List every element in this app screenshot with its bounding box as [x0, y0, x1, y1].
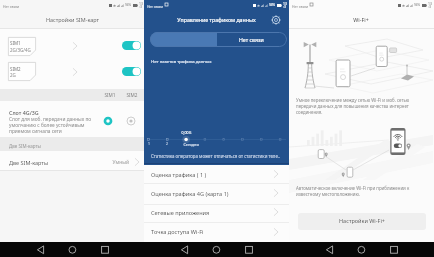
- staticText: Нет связи: [292, 4, 309, 9]
- staticText: 94%: [269, 3, 276, 7]
- staticText: Слот для моб. передачи данных по умолчан…: [9, 116, 92, 134]
- staticText: Автоматическое включение Wi-Fi при прибл…: [296, 185, 410, 197]
- button[interactable]: [298, 213, 426, 230]
- staticText: 13:30: [283, 1, 287, 9]
- staticText: Нет связи: [147, 4, 164, 9]
- staticText: 2G/3G/4G: [10, 47, 31, 53]
- staticText: 13:30: [428, 1, 432, 9]
- staticText: Статистика оператора может отличаться от…: [151, 153, 281, 159]
- staticText: Настройки SIM-карт: [46, 16, 99, 23]
- button[interactable]: [144, 222, 289, 241]
- staticText: 94%: [125, 3, 132, 7]
- staticText: Слот 4G/3G: [9, 109, 39, 116]
- button[interactable]: [0, 58, 144, 88]
- button[interactable]: [144, 165, 289, 184]
- staticText: 94%: [414, 3, 421, 7]
- staticText: Оценка трафика ( 1 ): [151, 171, 207, 179]
- staticText: Две SIM-карты: [9, 159, 49, 166]
- staticText: Управление трафиком данных: [177, 16, 256, 23]
- staticText: Точка доступа Wi-Fi: [151, 228, 204, 236]
- staticText: Умное переключение между сетью Wi-Fi и м…: [296, 97, 410, 115]
- staticText: 0,00 Б: [181, 130, 192, 135]
- button[interactable]: SIM 1: [150, 32, 217, 47]
- staticText: 2: [166, 141, 168, 146]
- staticText: 2G: [10, 72, 16, 78]
- button[interactable]: [0, 151, 144, 171]
- staticText: 13:30: [139, 1, 143, 9]
- button[interactable]: [144, 184, 289, 203]
- staticText: 1: [148, 141, 150, 146]
- staticText: SIM1: [104, 92, 116, 98]
- staticText: Две SIM-карты: [9, 143, 41, 149]
- staticText: SIM2: [10, 66, 21, 72]
- staticText: Оценка трафика 4G (карта 1): [151, 190, 229, 198]
- staticText: Настройки Wi-Fi+: [339, 217, 385, 224]
- button[interactable]: Use SIM1 for data: [102, 115, 114, 127]
- staticText: SIM1: [10, 40, 21, 46]
- staticText: Нет пакетов трафика данных: [151, 58, 212, 64]
- staticText: Нет связи: [239, 36, 264, 43]
- staticText: SIM2: [126, 92, 138, 98]
- button[interactable]: [144, 203, 289, 222]
- staticText: Wi-Fi+: [353, 16, 369, 23]
- staticText: Нет связи: [3, 4, 20, 9]
- button[interactable]: Нет связи: [216, 32, 286, 47]
- button[interactable]: Enable SIM: [122, 41, 141, 50]
- button[interactable]: Use SIM2 for data: [125, 115, 137, 127]
- button[interactable]: [0, 28, 144, 58]
- button[interactable]: SIM2: [8, 62, 36, 81]
- staticText: Сетевые приложения: [151, 209, 210, 217]
- button[interactable]: SIM1: [8, 37, 36, 56]
- staticText: Сегодня: [183, 142, 199, 147]
- staticText: Умный: [112, 159, 129, 166]
- button[interactable]: Enable SIM: [122, 67, 141, 76]
- button[interactable]: Settings: [270, 14, 282, 26]
